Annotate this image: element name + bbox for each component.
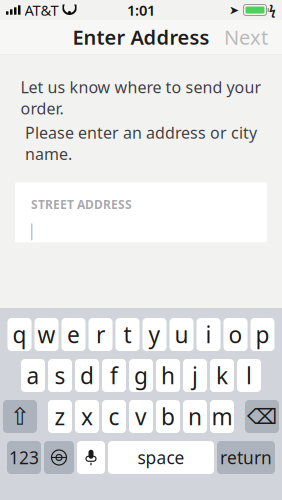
- button[interactable]: Dictate: [77, 441, 105, 474]
- staticText: AT&T: [24, 0, 58, 20]
- button[interactable]: Delete: [245, 400, 279, 433]
- button[interactable]: v: [129, 400, 153, 433]
- button[interactable]: Next: [214, 18, 278, 56]
- staticText: s: [54, 360, 65, 390]
- button[interactable]: k: [210, 359, 234, 392]
- staticText: q: [12, 319, 26, 349]
- button[interactable]: n: [183, 400, 207, 433]
- staticText: f: [110, 360, 118, 390]
- button[interactable]: c: [102, 400, 126, 433]
- staticText: k: [216, 360, 228, 390]
- button[interactable]: u: [169, 318, 193, 351]
- staticText: e: [67, 319, 80, 349]
- staticText: ⇧: [10, 403, 30, 430]
- button[interactable]: l: [237, 359, 261, 392]
- button[interactable]: p: [250, 318, 274, 351]
- staticText: Please enter an address or city name.: [25, 122, 257, 164]
- button[interactable]: r: [88, 318, 112, 351]
- button[interactable]: STREET ADDRESS: [15, 182, 267, 242]
- button[interactable]: t: [115, 318, 139, 351]
- staticText: z: [54, 401, 65, 431]
- button[interactable]: z: [48, 400, 72, 433]
- staticText: ⌫: [247, 404, 277, 429]
- staticText: l: [246, 360, 252, 390]
- staticText: r: [96, 319, 105, 349]
- button[interactable]: f: [102, 359, 126, 392]
- button[interactable]: i: [196, 318, 220, 351]
- button[interactable]: w: [34, 318, 58, 351]
- staticText: t: [123, 319, 131, 349]
- button[interactable]: m: [210, 400, 234, 433]
- button[interactable]: s: [48, 359, 72, 392]
- staticText: v: [135, 401, 147, 431]
- staticText: w: [37, 319, 55, 349]
- staticText: y: [148, 319, 160, 349]
- button[interactable]: h: [156, 359, 180, 392]
- staticText: space: [137, 446, 184, 469]
- staticText: 123: [9, 446, 39, 469]
- staticText: STREET ADDRESS: [31, 196, 132, 212]
- staticText: ➤: [229, 3, 239, 17]
- staticText: i: [205, 319, 211, 349]
- staticText: p: [255, 319, 269, 349]
- staticText: g: [134, 360, 148, 390]
- button[interactable]: Shift: [3, 400, 37, 433]
- button[interactable]: o: [223, 318, 247, 351]
- staticText: n: [188, 401, 202, 431]
- button[interactable]: y: [142, 318, 166, 351]
- button[interactable]: b: [156, 400, 180, 433]
- button[interactable]: Next keyboard: [44, 441, 74, 474]
- staticText: o: [228, 319, 242, 349]
- staticText: return: [220, 446, 272, 469]
- staticText: Enter Address: [72, 24, 209, 50]
- button[interactable]: g: [129, 359, 153, 392]
- button[interactable]: space: [108, 441, 214, 474]
- button[interactable]: d: [75, 359, 99, 392]
- staticText: d: [80, 360, 94, 390]
- staticText: b: [161, 401, 175, 431]
- staticText: ϟ: [269, 2, 276, 18]
- button[interactable]: 123: [7, 441, 41, 474]
- button[interactable]: e: [61, 318, 85, 351]
- staticText: Next: [224, 24, 268, 50]
- button[interactable]: x: [75, 400, 99, 433]
- staticText: h: [161, 360, 175, 390]
- staticText: x: [81, 401, 93, 431]
- button[interactable]: a: [21, 359, 45, 392]
- button[interactable]: q: [7, 318, 31, 351]
- staticText: 1:01: [127, 0, 155, 20]
- staticText: u: [174, 319, 188, 349]
- staticText: a: [26, 360, 39, 390]
- staticText: j: [192, 360, 198, 390]
- staticText: c: [108, 401, 119, 431]
- button[interactable]: return: [217, 441, 275, 474]
- button[interactable]: j: [183, 359, 207, 392]
- staticText: m: [211, 401, 232, 431]
- staticText: Let us know where to send your order.: [20, 76, 261, 119]
